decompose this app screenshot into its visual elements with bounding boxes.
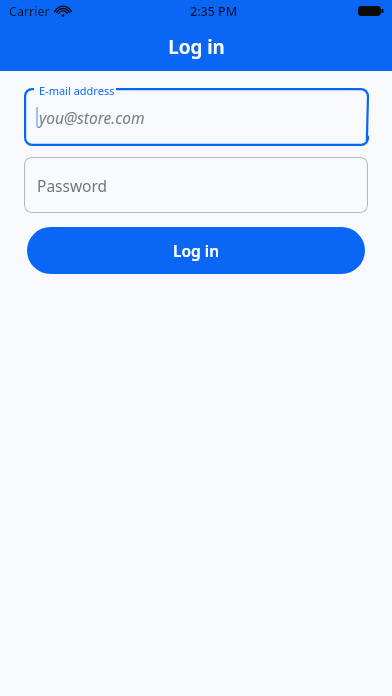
- staticText: E-mail address: [39, 83, 115, 98]
- button[interactable]: Log in: [27, 227, 365, 274]
- staticText: Password: [37, 175, 108, 196]
- button[interactable]: Password: [24, 157, 368, 213]
- other: Battery full: [358, 5, 384, 17]
- staticText: you@store.com: [39, 107, 145, 128]
- staticText: 2:35 PM: [190, 3, 238, 20]
- staticText: Carrier: [9, 3, 50, 20]
- other: Wi-Fi signal: [55, 5, 71, 17]
- staticText: Log in: [173, 240, 220, 261]
- staticText: Log in: [168, 34, 225, 60]
- button[interactable]: E-mail address: [24, 88, 368, 146]
